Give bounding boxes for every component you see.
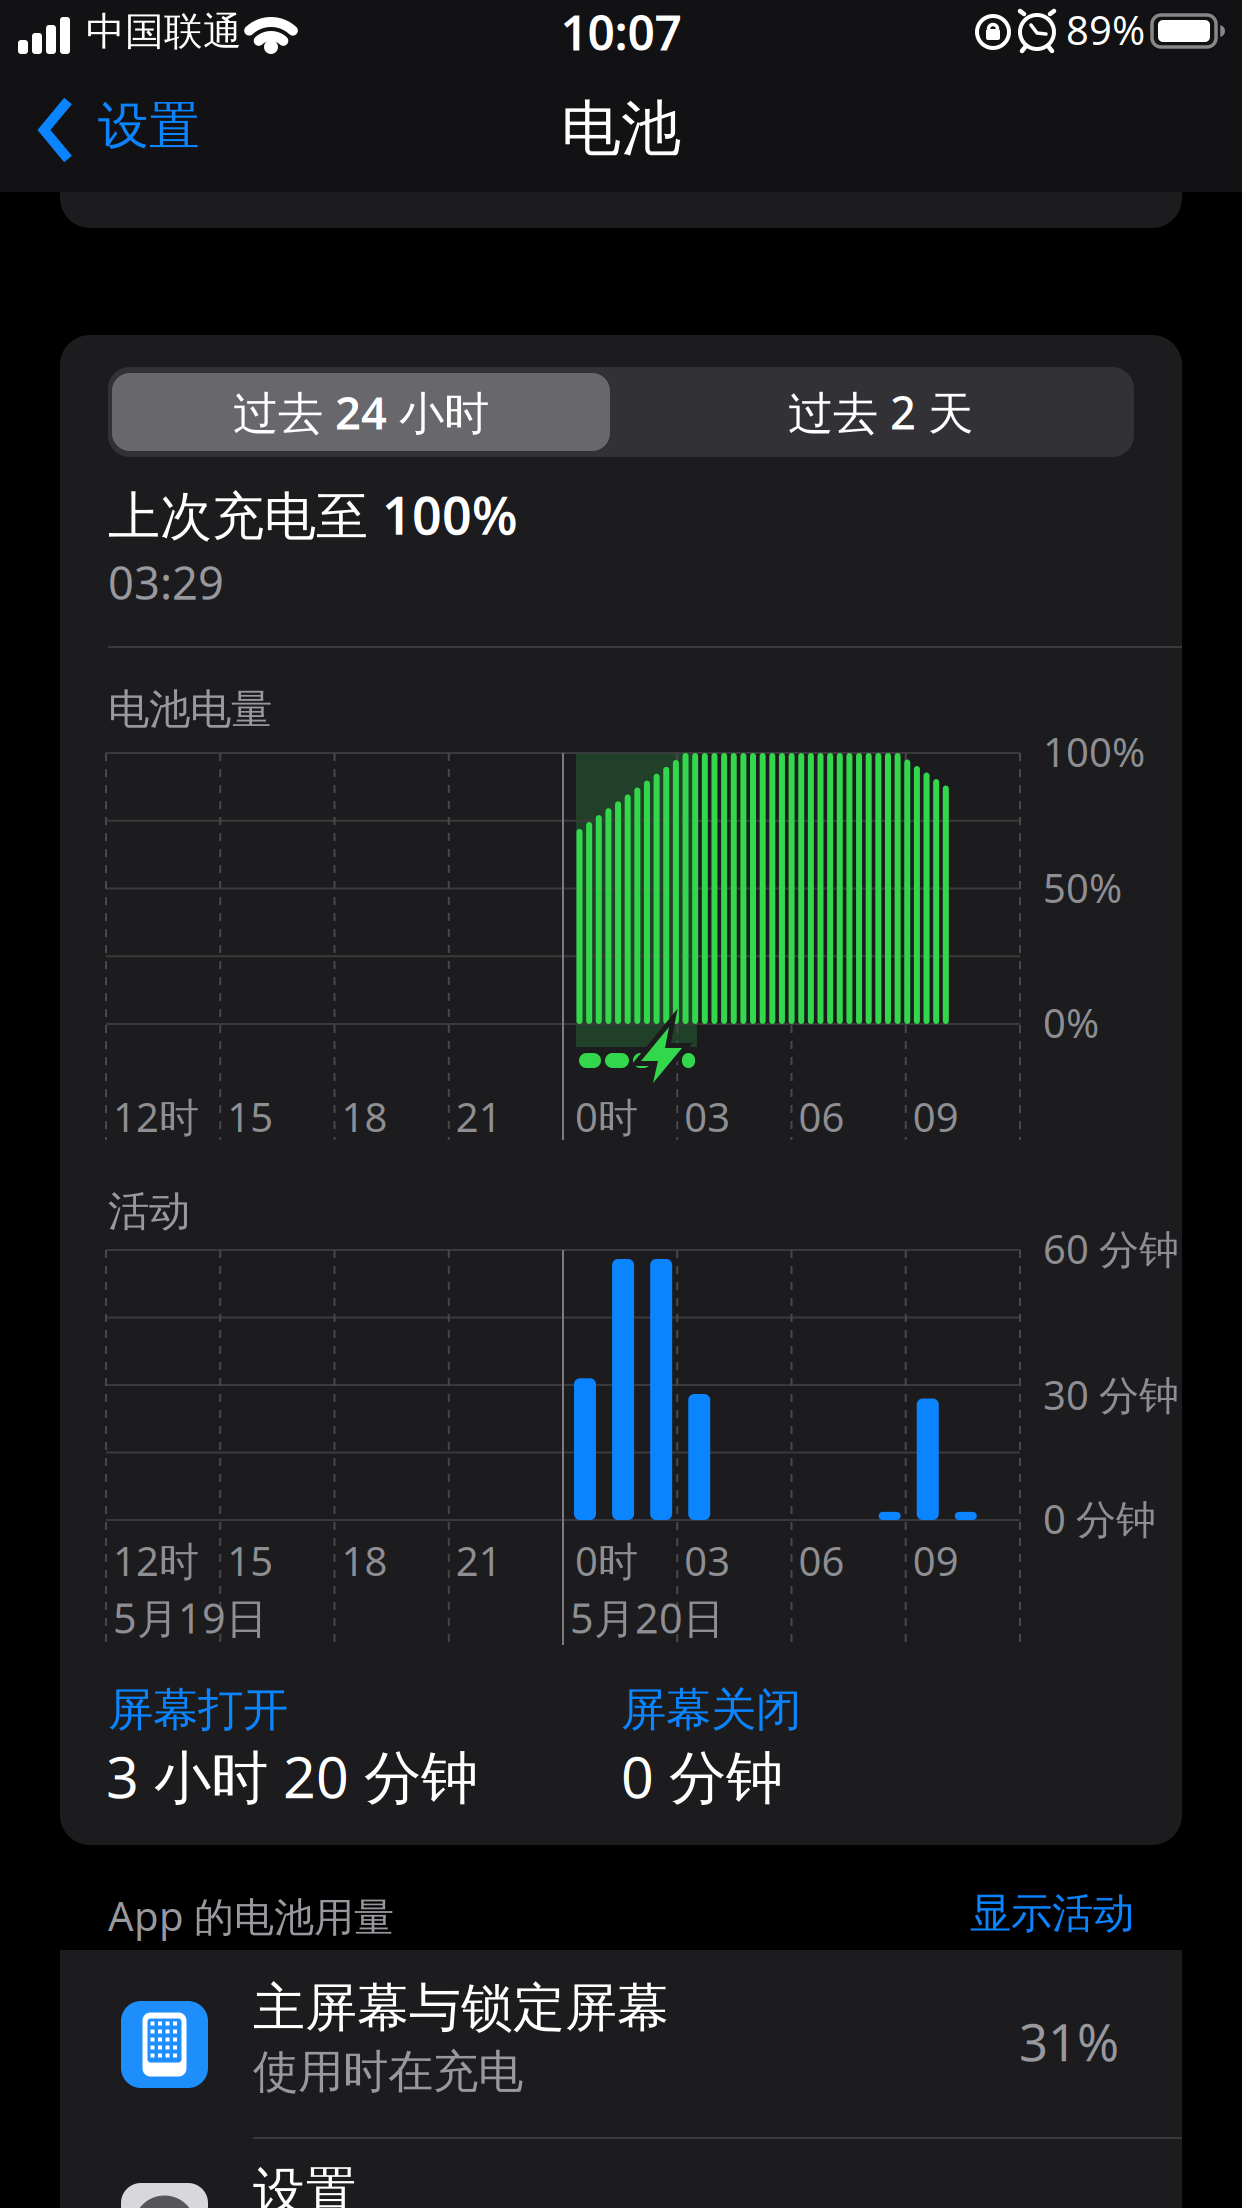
staticText: 12时: [113, 1090, 199, 1143]
staticText: 上次充电至 100%: [108, 480, 518, 549]
staticText: 18: [341, 1090, 387, 1143]
staticText: 3 小时 20 分钟: [106, 1738, 478, 1814]
staticText: App 的电池用量: [108, 1889, 394, 1942]
staticText: 过去 24 小时: [233, 382, 489, 442]
staticText: 18: [341, 1534, 387, 1587]
button[interactable]: 设置: [60, 2139, 1182, 2208]
button[interactable]: 显示活动: [700, 1888, 1134, 1939]
staticText: 活动: [108, 1186, 190, 1237]
staticText: 06: [798, 1090, 844, 1143]
staticText: 21: [456, 1534, 502, 1587]
staticText: 过去 2 天: [788, 382, 973, 442]
staticText: 电池: [561, 92, 681, 166]
staticText: 30 分钟: [1043, 1368, 1179, 1421]
staticText: 50%: [1043, 861, 1122, 914]
staticText: 31%: [1019, 2008, 1119, 2075]
button[interactable]: 返回设置: [0, 0, 240, 192]
staticText: 15: [227, 1534, 273, 1587]
staticText: 设置: [98, 95, 200, 157]
staticText: 0时: [575, 1090, 638, 1143]
staticText: 5月20日: [570, 1590, 724, 1645]
staticText: 0 分钟: [621, 1738, 783, 1814]
staticText: 12时: [113, 1534, 199, 1587]
staticText: 0%: [1043, 996, 1099, 1049]
staticText: 03:29: [108, 552, 224, 612]
staticText: 5月19日: [113, 1590, 267, 1645]
staticText: 屏幕关闭: [621, 1682, 801, 1738]
staticText: 09: [913, 1090, 959, 1143]
staticText: 06: [798, 1534, 844, 1587]
staticText: 03: [684, 1090, 730, 1143]
staticText: 100%: [1043, 725, 1145, 778]
staticText: 显示活动: [970, 1888, 1134, 1939]
staticText: 60 分钟: [1043, 1222, 1179, 1275]
button[interactable]: 过去 24 小时: [112, 373, 610, 451]
button[interactable]: 主屏幕与锁定屏幕: [60, 1950, 1182, 2138]
staticText: 0时: [575, 1534, 638, 1587]
staticText: 电池电量: [108, 684, 272, 735]
button[interactable]: 过去 2 天: [627, 373, 1134, 451]
staticText: 设置: [253, 2160, 357, 2208]
staticText: 89%: [1066, 3, 1145, 56]
staticText: 10:07: [560, 0, 681, 64]
staticText: 使用时在充电: [253, 2044, 523, 2100]
staticText: 03: [684, 1534, 730, 1587]
staticText: 0 分钟: [1043, 1492, 1156, 1545]
staticText: 21: [456, 1090, 502, 1143]
staticText: 15: [227, 1090, 273, 1143]
staticText: 09: [913, 1534, 959, 1587]
staticText: 屏幕打开: [108, 1682, 288, 1738]
staticText: 主屏幕与锁定屏幕: [253, 1976, 669, 2040]
staticText: 中国联通: [86, 8, 242, 55]
